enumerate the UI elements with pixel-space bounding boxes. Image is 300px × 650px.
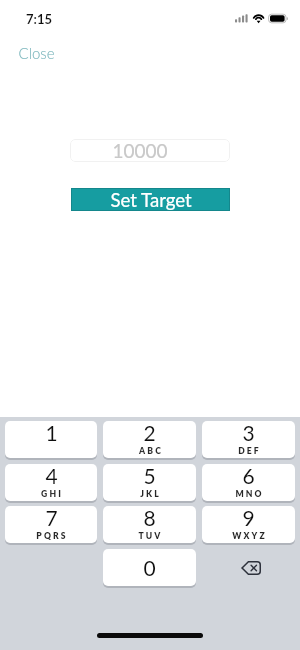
button[interactable]: 2 bbox=[103, 421, 196, 458]
staticText: 3 bbox=[242, 421, 255, 445]
button[interactable]: 8 bbox=[103, 506, 196, 543]
button[interactable]: 5 bbox=[103, 464, 196, 501]
button[interactable]: 4 bbox=[5, 464, 97, 501]
staticText: MNO bbox=[235, 489, 264, 499]
staticText: GHI bbox=[41, 489, 63, 499]
staticText: 4 bbox=[45, 464, 58, 488]
staticText: 7 bbox=[45, 506, 58, 530]
staticText: 9 bbox=[242, 506, 255, 530]
button[interactable]: 10000 bbox=[70, 139, 230, 162]
button[interactable]: Delete bbox=[202, 549, 295, 586]
staticText: ABC bbox=[139, 446, 163, 456]
staticText: DEF bbox=[238, 446, 261, 456]
button[interactable]: 0 bbox=[103, 549, 196, 586]
staticText: PQRS bbox=[36, 531, 68, 541]
button[interactable]: Close bbox=[13, 40, 60, 66]
staticText: 8 bbox=[143, 506, 156, 530]
staticText: TUV bbox=[138, 531, 163, 541]
staticText: WXYZ bbox=[232, 531, 267, 541]
staticText: JKL bbox=[140, 489, 161, 499]
staticText: 6 bbox=[242, 464, 255, 488]
staticText: Close bbox=[18, 44, 55, 62]
staticText: Set Target bbox=[110, 189, 192, 211]
staticText: 2 bbox=[143, 421, 156, 445]
button[interactable]: 6 bbox=[202, 464, 295, 501]
button[interactable]: 3 bbox=[202, 421, 295, 458]
staticText: 10000 bbox=[112, 139, 168, 162]
staticText: 0 bbox=[143, 555, 156, 580]
button[interactable]: 9 bbox=[202, 506, 295, 543]
staticText: 5 bbox=[143, 464, 156, 488]
button[interactable]: 1 bbox=[5, 421, 97, 458]
button[interactable]: 7 bbox=[5, 506, 97, 543]
staticText: 1 bbox=[45, 421, 58, 445]
button[interactable]: Set Target bbox=[71, 188, 230, 211]
staticText: 7:15 bbox=[26, 11, 52, 27]
